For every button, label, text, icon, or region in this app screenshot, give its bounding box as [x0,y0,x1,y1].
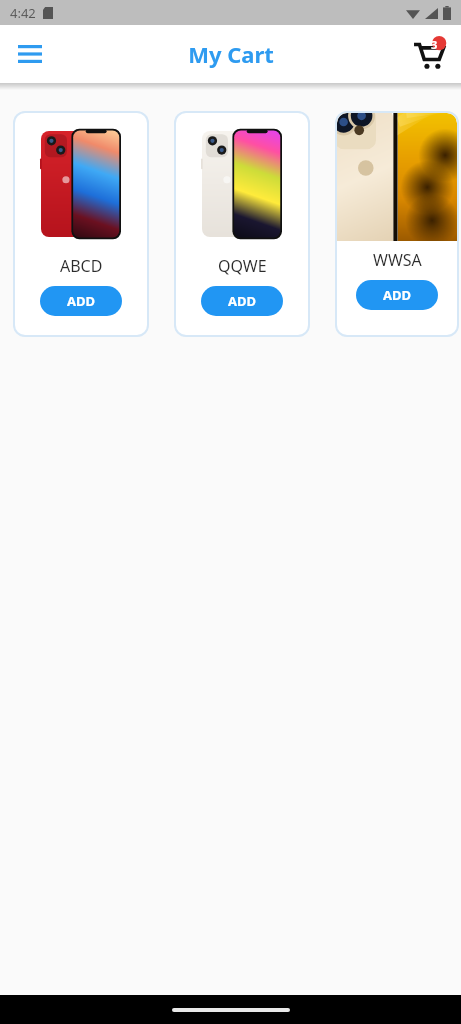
button[interactable]: ADD [356,280,438,310]
button[interactable]: ADD [201,286,283,316]
button[interactable]: WWSA [337,113,457,335]
button[interactable]: QQWE [176,113,308,335]
staticText: ADD [67,292,96,310]
staticText: ABCD [60,255,103,277]
staticText: 3 [431,37,438,52]
button[interactable]: ADD [40,286,122,316]
staticText: WWSA [373,249,422,271]
staticText: 4:42 [10,4,36,22]
button[interactable]: Cart [405,30,453,78]
staticText: My Cart [188,39,274,69]
staticText: QQWE [218,255,267,277]
button[interactable]: Menu [8,32,52,76]
staticText: ADD [383,286,412,304]
button[interactable]: ABCD [15,113,147,335]
staticText: ADD [228,292,257,310]
